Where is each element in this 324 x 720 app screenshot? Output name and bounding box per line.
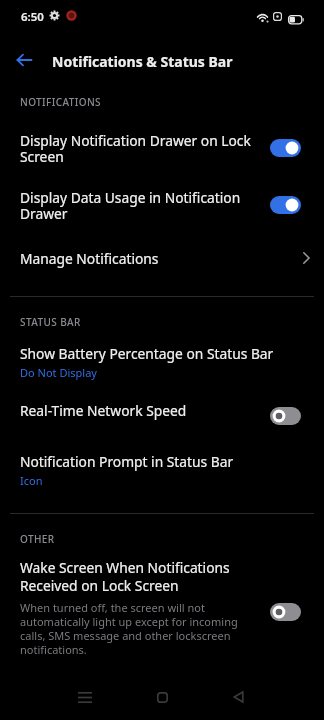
button[interactable]: Display Notification Drawer on Lock Scre…: [0, 122, 324, 174]
button[interactable]: [0, 38, 48, 82]
staticText: Notification Prompt in Status Bar: [20, 452, 234, 471]
staticText: Do Not Display: [20, 365, 97, 380]
staticText: Wake Screen When Notifications Received …: [20, 558, 230, 595]
button[interactable]: Wake Screen When Notifications Received …: [0, 552, 324, 663]
button[interactable]: [138, 674, 186, 720]
staticText: NOTIFICATIONS: [20, 95, 101, 109]
button[interactable]: Notification Prompt in Status Bar: [0, 444, 324, 496]
staticText: STATUS BAR: [20, 315, 81, 329]
staticText: Display Data Usage in Notification Drawe…: [20, 188, 270, 223]
staticText: Display Notification Drawer on Lock Scre…: [20, 131, 270, 166]
button[interactable]: Show Battery Percentage on Status Bar: [0, 336, 324, 388]
staticText: Icon: [20, 473, 43, 488]
staticText: Manage Notifications: [20, 249, 303, 268]
staticText: OTHER: [20, 532, 55, 546]
staticText: 6:50: [21, 9, 44, 25]
staticText: Show Battery Percentage on Status Bar: [20, 344, 274, 363]
button[interactable]: Manage Notifications: [0, 238, 324, 278]
staticText: When turned off, the screen will not aut…: [20, 600, 238, 657]
button[interactable]: [214, 674, 262, 720]
staticText: Notifications & Status Bar: [52, 52, 233, 71]
button[interactable]: Display Data Usage in Notification Drawe…: [0, 179, 324, 231]
button[interactable]: [61, 674, 109, 720]
staticText: Real-Time Network Speed: [20, 401, 270, 420]
button[interactable]: Real-Time Network Speed: [0, 392, 324, 434]
